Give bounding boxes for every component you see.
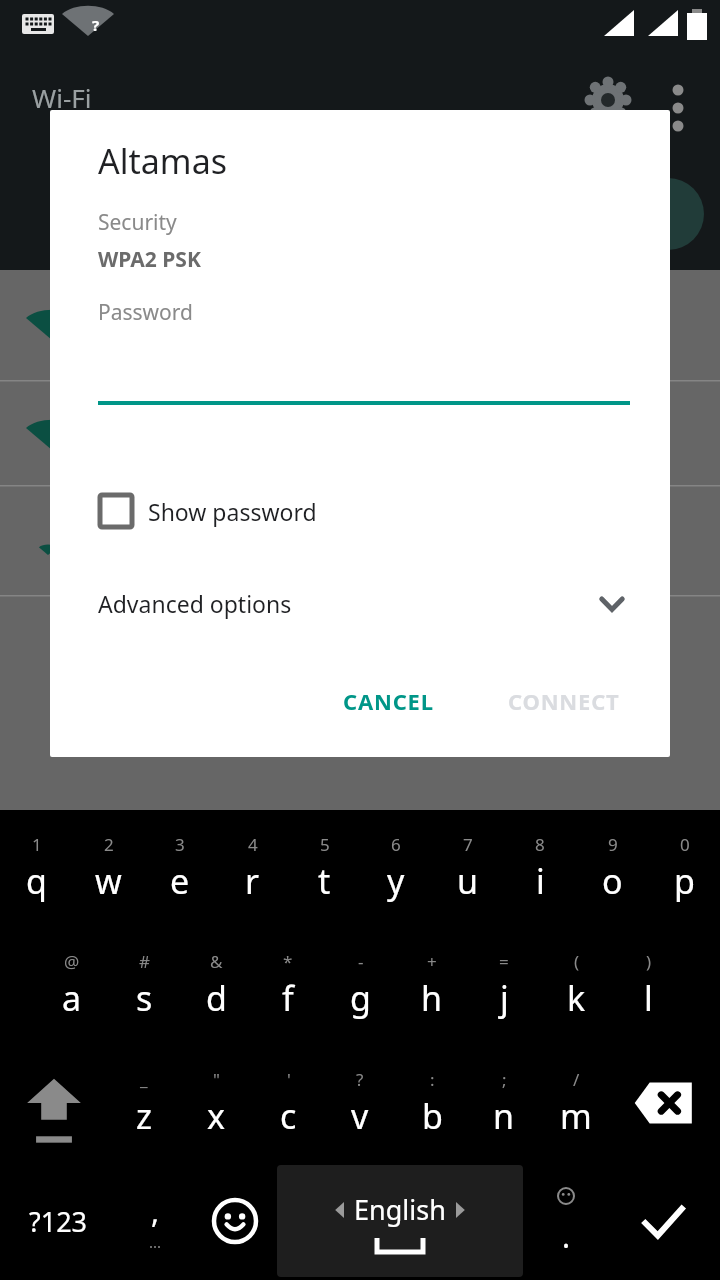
staticText: ;: [502, 1068, 507, 1091]
button[interactable]: &: [180, 926, 252, 1044]
staticText: e: [170, 858, 190, 904]
staticText: g: [350, 975, 371, 1021]
staticText: t: [318, 858, 331, 904]
staticText: Wi-Fi: [32, 80, 92, 115]
staticText: a: [62, 975, 82, 1021]
staticText: 0: [680, 833, 690, 856]
button[interactable]: -: [324, 926, 396, 1044]
staticText: Show password: [148, 496, 317, 527]
staticText: k: [567, 975, 586, 1021]
staticText: w: [95, 858, 122, 904]
button[interactable]: 5: [288, 810, 360, 926]
button[interactable]: CONNECT: [490, 672, 638, 730]
staticText: (: [574, 950, 580, 973]
button[interactable]: 1: [0, 810, 72, 926]
staticText: q: [26, 858, 47, 904]
button[interactable]: +: [396, 926, 468, 1044]
staticText: Altamas: [98, 138, 227, 184]
staticText: n: [493, 1093, 515, 1139]
staticText: f: [282, 975, 294, 1021]
staticText: b: [422, 1093, 443, 1139]
button[interactable]: 7: [432, 810, 504, 926]
staticText: *: [283, 950, 293, 973]
staticText: ?: [356, 1068, 364, 1091]
staticText: Security: [98, 208, 177, 237]
staticText: z: [136, 1093, 152, 1139]
button[interactable]: Backspace: [612, 1044, 720, 1162]
staticText: ': [287, 1068, 291, 1091]
staticText: 7: [463, 833, 473, 856]
button[interactable]: 2: [72, 810, 144, 926]
staticText: CONNECT: [508, 686, 620, 716]
staticText: :: [430, 1068, 435, 1091]
staticText: _: [140, 1068, 148, 1091]
staticText: ,: [151, 1191, 160, 1232]
button[interactable]: 8: [504, 810, 576, 926]
staticText: 6: [391, 833, 401, 856]
staticText: p: [674, 858, 695, 904]
staticText: l: [644, 975, 653, 1021]
staticText: j: [500, 975, 509, 1021]
button[interactable]: Enter: [605, 1162, 720, 1280]
button[interactable]: 9: [576, 810, 648, 926]
button[interactable]: 3: [144, 810, 216, 926]
button[interactable]: Show password: [98, 487, 317, 535]
staticText: &: [210, 950, 223, 973]
staticText: s: [136, 975, 153, 1021]
staticText: /: [573, 1068, 580, 1091]
staticText: English: [354, 1191, 446, 1228]
staticText: #: [139, 950, 150, 973]
button[interactable]: Emoji: [195, 1162, 274, 1280]
staticText: CANCEL: [343, 686, 434, 716]
button[interactable]: 6: [360, 810, 432, 926]
staticText: =: [499, 950, 509, 973]
button[interactable]: ,: [116, 1162, 195, 1280]
button[interactable]: ": [180, 1044, 252, 1162]
staticText: WPA2 PSK: [98, 245, 201, 274]
button[interactable]: ': [252, 1044, 324, 1162]
button[interactable]: 0: [648, 810, 720, 926]
staticText: 8: [535, 833, 545, 856]
button[interactable]: =: [468, 926, 540, 1044]
staticText: h: [421, 975, 443, 1021]
staticText: Password: [98, 298, 193, 327]
button[interactable]: /: [540, 1044, 612, 1162]
button[interactable]: Shift: [0, 1044, 108, 1162]
staticText: ): [646, 950, 652, 973]
staticText: 3: [175, 833, 185, 856]
button[interactable]: .: [526, 1162, 605, 1280]
staticText: c: [280, 1093, 297, 1139]
staticText: i: [536, 858, 545, 904]
button[interactable]: CANCEL: [325, 672, 452, 730]
button[interactable]: ;: [468, 1044, 540, 1162]
button[interactable]: _: [108, 1044, 180, 1162]
staticText: .: [562, 1216, 571, 1257]
staticText: 1: [32, 833, 42, 856]
button[interactable]: #: [108, 926, 180, 1044]
button[interactable]: 4: [216, 810, 288, 926]
staticText: v: [351, 1093, 369, 1139]
button[interactable]: ?: [324, 1044, 396, 1162]
button[interactable]: (: [540, 926, 612, 1044]
staticText: Advanced options: [98, 588, 292, 619]
staticText: -: [358, 950, 364, 973]
button[interactable]: *: [252, 926, 324, 1044]
button[interactable]: :: [396, 1044, 468, 1162]
staticText: ...: [149, 1232, 162, 1252]
button[interactable]: Advanced options: [50, 575, 670, 631]
staticText: y: [387, 858, 405, 904]
staticText: m: [560, 1093, 592, 1139]
button[interactable]: @: [36, 926, 108, 1044]
button[interactable]: English: [277, 1165, 523, 1277]
button[interactable]: ?123: [0, 1162, 116, 1280]
staticText: o: [602, 858, 623, 904]
staticText: ?123: [29, 1203, 88, 1240]
staticText: @: [64, 950, 80, 973]
staticText: +: [427, 950, 437, 973]
staticText: x: [207, 1093, 225, 1139]
staticText: ?: [92, 15, 100, 35]
staticText: r: [245, 858, 260, 904]
staticText: 5: [320, 833, 330, 856]
button[interactable]: ): [612, 926, 684, 1044]
